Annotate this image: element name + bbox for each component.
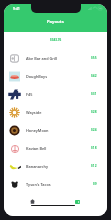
button[interactable]: HoneyMoon: [4, 121, 107, 139]
staticText: $55: [91, 56, 97, 60]
staticText: Abe Bar and Grill: [26, 56, 58, 61]
staticText: $343.76: [50, 38, 62, 42]
staticText: Payouts: [47, 19, 64, 25]
staticText: Tyson's Tacos: [26, 182, 51, 187]
staticText: Kavian Bell: [26, 146, 47, 151]
staticText: Wayside: [26, 110, 42, 115]
staticText: DoughBoys: [26, 74, 48, 79]
staticText: $24: [91, 128, 97, 132]
button[interactable]: Home: [22, 195, 42, 208]
staticText: $18: [91, 146, 97, 150]
staticText: $31: [91, 92, 97, 96]
button[interactable]: Abe Bar and Grill: [4, 49, 107, 67]
staticText: HoneyMoon: [26, 128, 49, 133]
button[interactable]: Payouts: [67, 195, 87, 208]
button[interactable]: F45: [4, 85, 107, 103]
button[interactable]: Tyson's Tacos: [4, 175, 107, 193]
button[interactable]: DoughBoys: [4, 67, 107, 85]
staticText: $12: [91, 164, 97, 168]
staticText: $9: [93, 182, 97, 186]
staticText: F45: [26, 92, 33, 97]
staticText: Bananarchy: [26, 164, 48, 169]
staticText: 9:41: [13, 6, 20, 11]
button[interactable]: Wayside: [4, 103, 107, 121]
staticText: $42: [91, 74, 97, 78]
button[interactable]: Bananarchy: [4, 157, 107, 175]
button[interactable]: Kavian Bell: [4, 139, 107, 157]
staticText: $28: [91, 110, 97, 114]
